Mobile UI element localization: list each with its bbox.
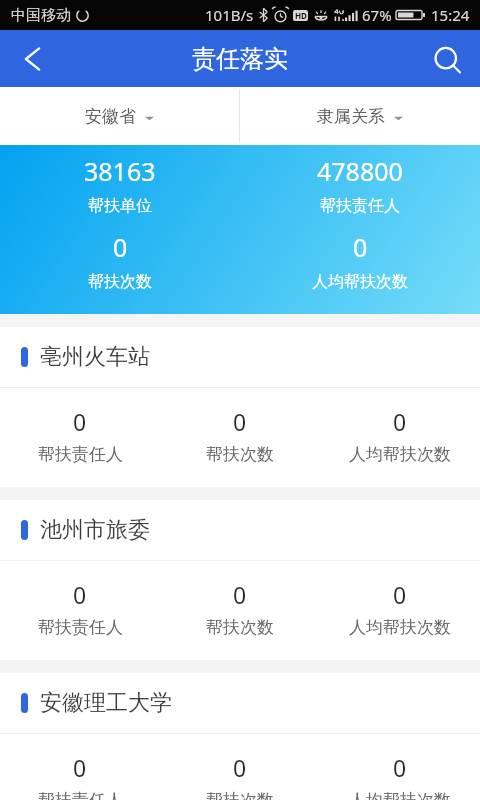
staticText: 安徽省	[85, 106, 136, 127]
staticText: 0	[233, 579, 247, 610]
staticText: 478800	[317, 154, 403, 188]
button[interactable]: 隶属关系	[240, 87, 480, 145]
staticText: 0	[73, 752, 87, 783]
staticText: 安徽理工大学	[40, 689, 172, 717]
staticText: 人均帮扶次数	[349, 444, 451, 465]
staticText: 0	[233, 752, 247, 783]
button[interactable]: 亳州火车站	[0, 327, 480, 487]
staticText: 人均帮扶次数	[312, 272, 408, 292]
staticText: 人均帮扶次数	[349, 617, 451, 638]
staticText: 帮扶次数	[206, 617, 274, 638]
staticText: HD	[295, 10, 307, 21]
staticText: 67%	[362, 5, 392, 25]
staticText: 帮扶单位	[88, 196, 152, 216]
staticText: 0	[393, 406, 407, 437]
staticText: 101B/s	[205, 5, 254, 25]
staticText: 38163	[84, 154, 156, 188]
staticText: 0	[73, 406, 87, 437]
staticText: 亳州火车站	[40, 343, 150, 371]
staticText: 中国移动	[11, 6, 71, 25]
staticText: 0	[393, 579, 407, 610]
staticText: 0	[73, 579, 87, 610]
staticText: 帮扶责任人	[320, 196, 400, 216]
staticText: 0	[393, 752, 407, 783]
staticText: 0	[353, 230, 368, 264]
staticText: 责任落实	[192, 44, 288, 74]
staticText: 15:24	[431, 5, 470, 25]
staticText: 帮扶次数	[206, 444, 274, 465]
staticText: 人均帮扶次数	[349, 790, 451, 800]
staticText: 帮扶责任人	[38, 790, 123, 800]
staticText: 0	[233, 406, 247, 437]
staticText: 池州市旅委	[40, 516, 150, 544]
button[interactable]: Back	[0, 30, 56, 87]
staticText: 隶属关系	[317, 106, 385, 127]
staticText: 0	[113, 230, 128, 264]
staticText: 帮扶责任人	[38, 444, 123, 465]
staticText: 帮扶次数	[206, 790, 274, 800]
staticText: 帮扶责任人	[38, 617, 123, 638]
staticText: 帮扶次数	[88, 272, 152, 292]
button[interactable]: 安徽理工大学	[0, 673, 480, 800]
button[interactable]: 池州市旅委	[0, 500, 480, 660]
button[interactable]: 安徽省	[0, 87, 239, 145]
button[interactable]: Search	[424, 30, 480, 87]
